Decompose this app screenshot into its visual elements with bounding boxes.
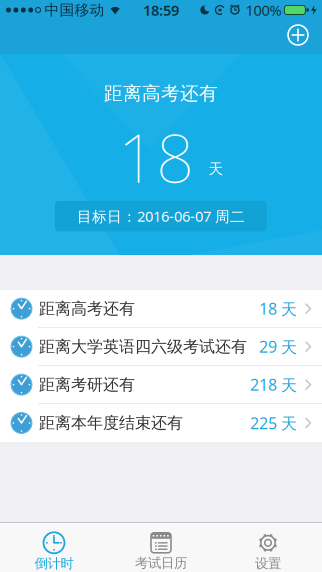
staticText: 距离考研还有 <box>39 375 135 394</box>
staticText: 距离高考还有 <box>39 299 135 318</box>
staticText: 距离高考还有 <box>104 82 218 105</box>
staticText: 考试日历 <box>135 555 187 571</box>
staticText: 218 天 <box>250 374 297 395</box>
staticText: 225 天 <box>250 412 297 434</box>
staticText: 设置 <box>255 555 281 572</box>
staticText: 距离本年度结束还有 <box>39 413 183 433</box>
button[interactable]: 添加 <box>283 22 313 52</box>
button[interactable]: 设置 <box>214 522 321 571</box>
staticText: 天 <box>208 160 223 178</box>
staticText: 18 天 <box>259 298 297 319</box>
button[interactable]: 目标日：2016-06-07 周二 <box>55 201 267 231</box>
staticText: 18:59 <box>143 0 179 20</box>
staticText: 中国移动 <box>45 1 105 19</box>
staticText: 目标日：2016-06-07 周二 <box>77 206 245 226</box>
button[interactable]: 距离大学英语四六级考试还有 <box>0 328 322 366</box>
button[interactable]: 距离考研还有 <box>0 366 322 404</box>
staticText: 29 天 <box>259 336 297 357</box>
staticText: 18 <box>118 113 194 201</box>
button[interactable]: 倒计时 <box>0 522 107 571</box>
button[interactable]: 距离高考还有 <box>0 290 322 328</box>
staticText: 距离大学英语四六级考试还有 <box>39 337 247 356</box>
button[interactable]: 距离本年度结束还有 <box>0 404 322 442</box>
staticText: 100% <box>245 0 281 20</box>
staticText: 倒计时 <box>34 555 73 572</box>
button[interactable]: 考试日历 <box>107 522 214 571</box>
